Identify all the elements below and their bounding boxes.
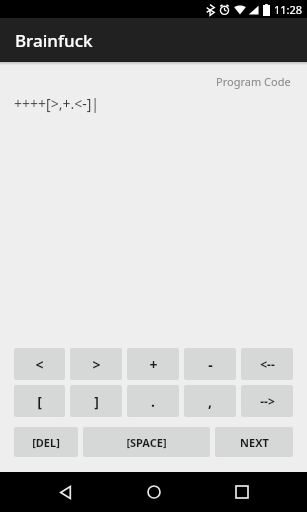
staticText: Program Code — [216, 74, 291, 89]
staticText: <-- — [260, 356, 275, 372]
staticText: - — [208, 355, 213, 374]
staticText: , — [208, 392, 212, 411]
staticText: 11:28 — [274, 2, 303, 17]
button[interactable]: + — [127, 348, 179, 380]
staticText: . — [151, 392, 155, 411]
button[interactable]: <-- — [241, 348, 293, 380]
staticText: [DEL] — [32, 435, 60, 450]
button[interactable]: ++++[>,+.<-]| — [14, 94, 307, 113]
button[interactable]: Home — [131, 472, 177, 512]
staticText: NEXT — [240, 435, 269, 450]
staticText: > — [92, 355, 101, 374]
button[interactable]: < — [14, 348, 65, 380]
button[interactable]: > — [70, 348, 122, 380]
button[interactable]: - — [184, 348, 236, 380]
button[interactable]: , — [184, 385, 236, 417]
staticText: + — [149, 355, 158, 374]
staticText: [ — [37, 392, 42, 411]
staticText: < — [35, 355, 44, 374]
staticText: --> — [260, 393, 275, 409]
button[interactable]: NEXT — [215, 427, 293, 457]
button[interactable]: --> — [241, 385, 293, 417]
button[interactable]: [ — [14, 385, 65, 417]
button[interactable]: . — [127, 385, 179, 417]
staticText: [SPACE] — [126, 435, 167, 450]
button[interactable]: Back — [42, 472, 88, 512]
button[interactable]: Recent apps — [219, 472, 265, 512]
staticText: ++++[>,+.<-]| — [14, 94, 99, 113]
staticText: ] — [94, 392, 99, 411]
button[interactable]: ] — [70, 385, 122, 417]
staticText: Brainfuck — [15, 29, 93, 52]
button[interactable]: [DEL] — [14, 427, 78, 457]
button[interactable]: [SPACE] — [83, 427, 210, 457]
